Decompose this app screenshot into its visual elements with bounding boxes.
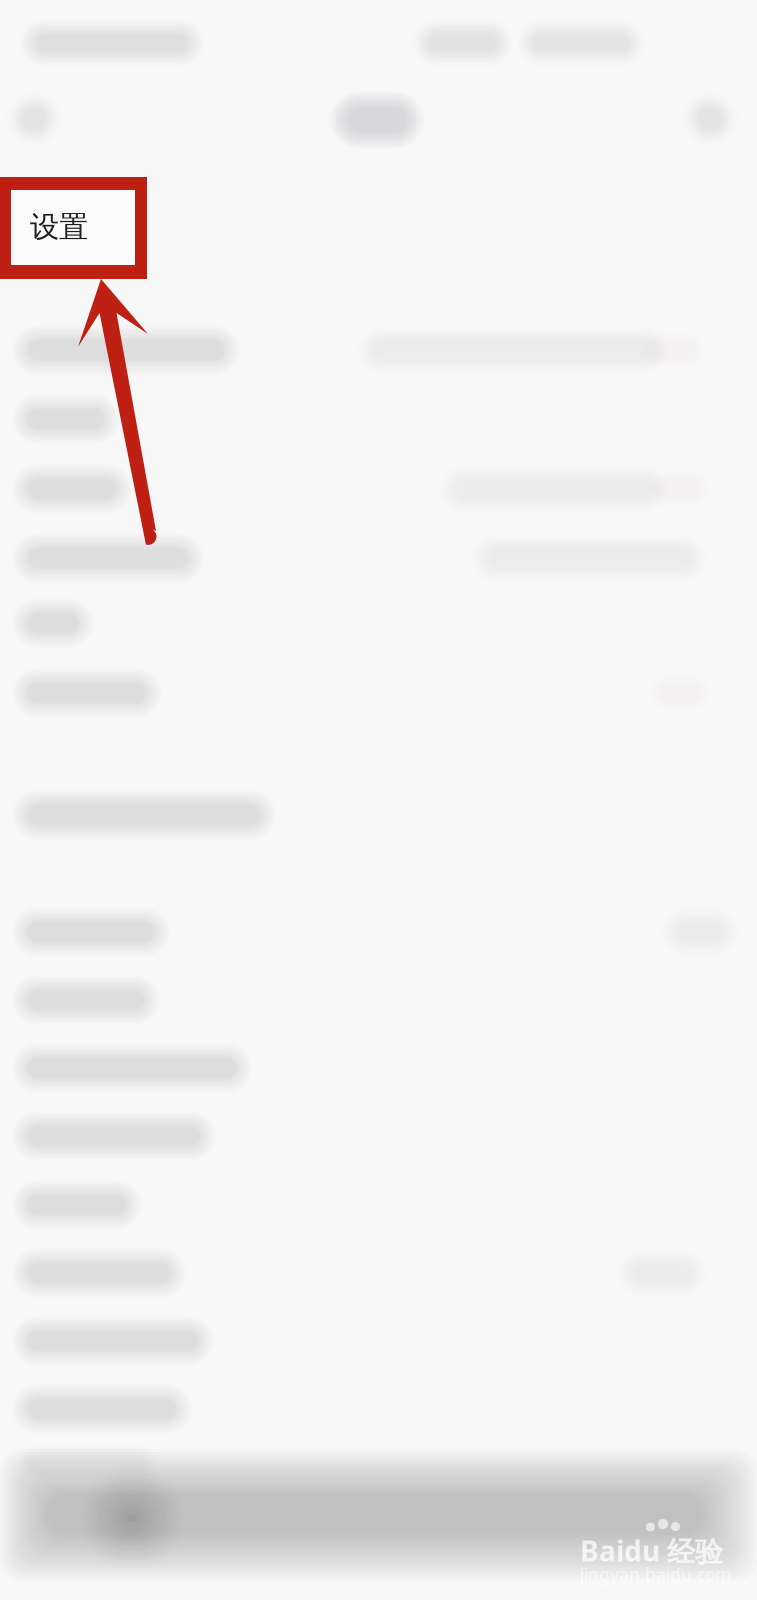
button[interactable]: Settings row: [0, 455, 757, 523]
button[interactable]: Settings row: [0, 589, 757, 657]
button[interactable]: Settings row: [0, 659, 757, 727]
staticText: Baidu 经验: [580, 1532, 723, 1569]
button[interactable]: Settings row: [0, 1375, 757, 1443]
button[interactable]: Settings row: [0, 898, 757, 966]
button[interactable]: Settings row: [0, 524, 757, 592]
button[interactable]: Settings row: [0, 1171, 757, 1239]
button[interactable]: Settings row: [0, 316, 757, 384]
staticText: jingyan.baidu.com: [580, 1563, 731, 1586]
button[interactable]: More: [676, 89, 744, 149]
button[interactable]: Settings row: [0, 385, 757, 453]
button[interactable]: Settings row: [0, 1034, 757, 1102]
button[interactable]: Settings row: [0, 966, 757, 1034]
staticText: 设置: [30, 209, 88, 245]
button[interactable]: Settings row: [0, 1239, 757, 1307]
button[interactable]: Back: [0, 89, 68, 149]
button[interactable]: Settings row: [0, 1102, 757, 1170]
button[interactable]: Settings row: [0, 1307, 757, 1375]
